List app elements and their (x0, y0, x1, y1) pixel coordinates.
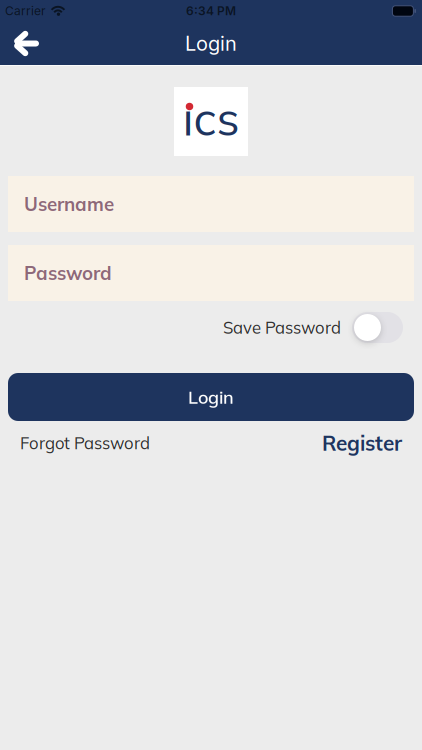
button[interactable]: Forgot Password (20, 432, 150, 453)
staticText: Password (24, 261, 112, 285)
staticText: Save Password (223, 317, 341, 338)
button[interactable] (0, 31, 39, 55)
button[interactable]: Password (8, 245, 414, 301)
staticText: Carrier (5, 4, 46, 18)
staticText: 6:34 PM (186, 4, 236, 18)
staticText: Login (185, 32, 237, 55)
staticText: Register (322, 430, 402, 456)
staticText: Forgot Password (20, 432, 150, 453)
staticText: ics (182, 89, 239, 147)
button[interactable]: Username (8, 176, 414, 232)
staticText: Username (24, 192, 114, 216)
button[interactable]: Login (8, 373, 414, 421)
staticText: Login (188, 386, 234, 408)
button[interactable] (352, 312, 403, 343)
button[interactable]: Register (322, 430, 402, 456)
